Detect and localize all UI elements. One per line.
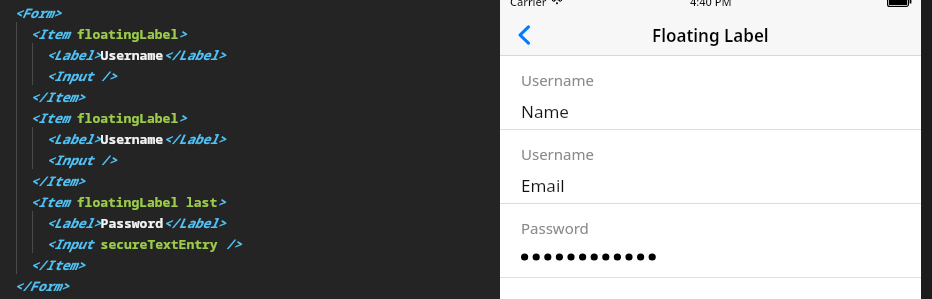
staticText: Password xyxy=(521,218,589,238)
button[interactable]: Password xyxy=(500,204,921,278)
staticText: <Item floatingLabel> xyxy=(30,109,187,127)
staticText: Carrier xyxy=(510,0,547,8)
staticText: Floating Label xyxy=(652,24,769,47)
staticText: 4:40 PM xyxy=(690,0,732,8)
staticText: <Item floatingLabel last> xyxy=(30,193,226,211)
staticText: Username xyxy=(521,70,594,90)
staticText: <Input /> xyxy=(46,151,117,169)
staticText: <Label>Password</Label> xyxy=(46,214,226,232)
button[interactable]: Username xyxy=(500,56,921,130)
staticText: <Label>Username</Label> xyxy=(46,46,226,64)
staticText: <Item floatingLabel> xyxy=(30,25,187,43)
button[interactable]: Username xyxy=(500,130,921,204)
staticText: <Input /> xyxy=(46,67,117,85)
button[interactable]: Back xyxy=(500,14,548,56)
staticText: Email xyxy=(521,174,565,197)
staticText: </Item> xyxy=(30,256,85,274)
staticText: <Label>Username</Label> xyxy=(46,130,226,148)
staticText: <Input secureTextEntry /> xyxy=(46,235,242,253)
staticText: Name xyxy=(521,100,569,123)
staticText: <Form> xyxy=(14,4,61,22)
staticText: </Item> xyxy=(30,88,85,106)
staticText: Username xyxy=(521,144,594,164)
staticText: </Item> xyxy=(30,172,85,190)
staticText: </Form> xyxy=(14,277,69,295)
